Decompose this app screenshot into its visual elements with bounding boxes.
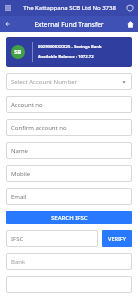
button[interactable]: SEARCH IFSC (6, 211, 132, 224)
staticText: Mobile (11, 170, 31, 178)
button[interactable]: VERIFY (102, 230, 132, 247)
button[interactable]: IFSC (6, 230, 98, 247)
button[interactable]: Select Account Number (6, 73, 132, 90)
button[interactable]: Menu (0, 0, 16, 16)
button[interactable]: Confirm account no (6, 119, 132, 136)
staticText: The Kattappana SCB Ltd No 3738 (23, 4, 116, 12)
button[interactable]: Bank (6, 253, 132, 270)
button[interactable]: Notifications (122, 0, 138, 16)
button[interactable]: Mobile (6, 165, 132, 182)
staticText: IFSC (11, 235, 24, 243)
button[interactable]: Name (6, 142, 132, 159)
staticText: 00290000XXX25 - Savings Bank (38, 44, 102, 50)
staticText: VERIFY (108, 235, 126, 242)
staticText: Email (11, 193, 27, 201)
button[interactable]: Back (0, 16, 16, 32)
staticText: Name (11, 147, 28, 155)
staticText: Bank (11, 258, 26, 266)
staticText: SB (14, 48, 22, 56)
staticText: SEARCH IFSC (51, 214, 88, 222)
button[interactable]: Account no (6, 96, 132, 113)
staticText: Select Account Number (11, 78, 78, 86)
button[interactable] (6, 276, 132, 293)
button[interactable]: Email (6, 188, 132, 205)
staticText: Confirm account no (11, 124, 67, 132)
staticText: Available Balance : 1072.72 (38, 54, 94, 60)
staticText: Account no (11, 101, 43, 109)
staticText: External Fund Transfer (34, 20, 104, 29)
button[interactable]: SB (6, 37, 132, 67)
button[interactable]: Home (122, 16, 138, 32)
